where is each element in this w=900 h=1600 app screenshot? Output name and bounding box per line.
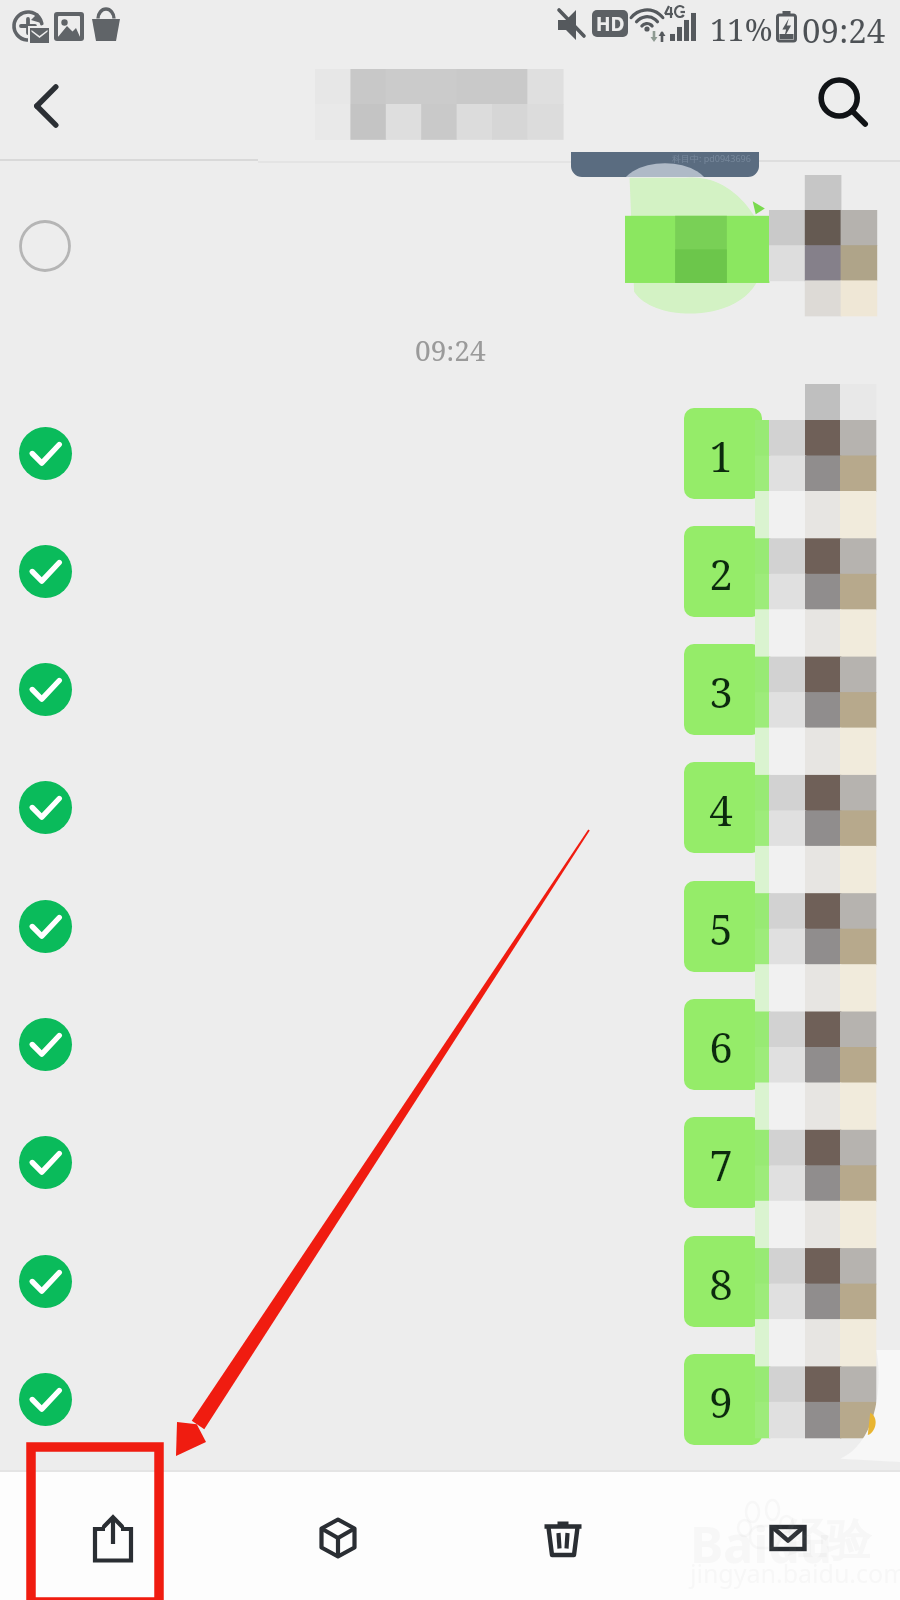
button[interactable]: Selected message 2 [19, 545, 72, 598]
button[interactable]: 5 [684, 881, 762, 972]
button[interactable]: Back [0, 58, 96, 154]
button[interactable]: Email [675, 1470, 900, 1600]
button[interactable]: 7 [684, 1117, 762, 1208]
staticText: 科目中: pd0943696 [672, 152, 751, 164]
staticText: 3 [709, 663, 733, 720]
button[interactable]: Selected message 9 [19, 1373, 72, 1426]
staticText: 09:24 [415, 331, 486, 369]
button[interactable]: Share [0, 1470, 225, 1600]
button[interactable]: Selected message 6 [19, 1018, 72, 1071]
button[interactable]: 9 [684, 1354, 762, 1445]
button[interactable]: 3 [684, 644, 762, 735]
staticText: 09:24 [802, 8, 886, 53]
button[interactable]: 1 [684, 408, 762, 499]
button[interactable]: Selected message 4 [19, 781, 72, 834]
staticText: 9 [709, 1373, 733, 1430]
button[interactable]: Delete [450, 1470, 675, 1600]
staticText: 5 [709, 900, 733, 957]
staticText: Baidu [690, 1510, 833, 1578]
button[interactable]: Selected message 7 [19, 1136, 72, 1189]
button[interactable]: 2 [684, 526, 762, 617]
staticText: 6 [709, 1018, 733, 1075]
staticText: 8 [709, 1255, 733, 1312]
button[interactable]: Select message [19, 220, 71, 272]
button[interactable]: Favorite [225, 1470, 450, 1600]
button[interactable]: Selected message 1 [19, 427, 72, 480]
staticText: 2 [709, 545, 733, 602]
button[interactable]: Selected message 8 [19, 1255, 72, 1308]
button[interactable]: 4 [684, 762, 762, 853]
button[interactable]: 6 [684, 999, 762, 1090]
button[interactable]: 8 [684, 1236, 762, 1327]
staticText: 7 [709, 1136, 733, 1193]
staticText: 1 [709, 427, 733, 484]
button[interactable]: Selected message 3 [19, 663, 72, 716]
staticText: 11% [710, 8, 773, 50]
button[interactable]: Selected message 5 [19, 900, 72, 953]
staticText: HD [596, 11, 625, 37]
staticText: 经验 [783, 1513, 871, 1568]
button[interactable]: Search [796, 56, 892, 152]
staticText: 4 [709, 781, 733, 838]
